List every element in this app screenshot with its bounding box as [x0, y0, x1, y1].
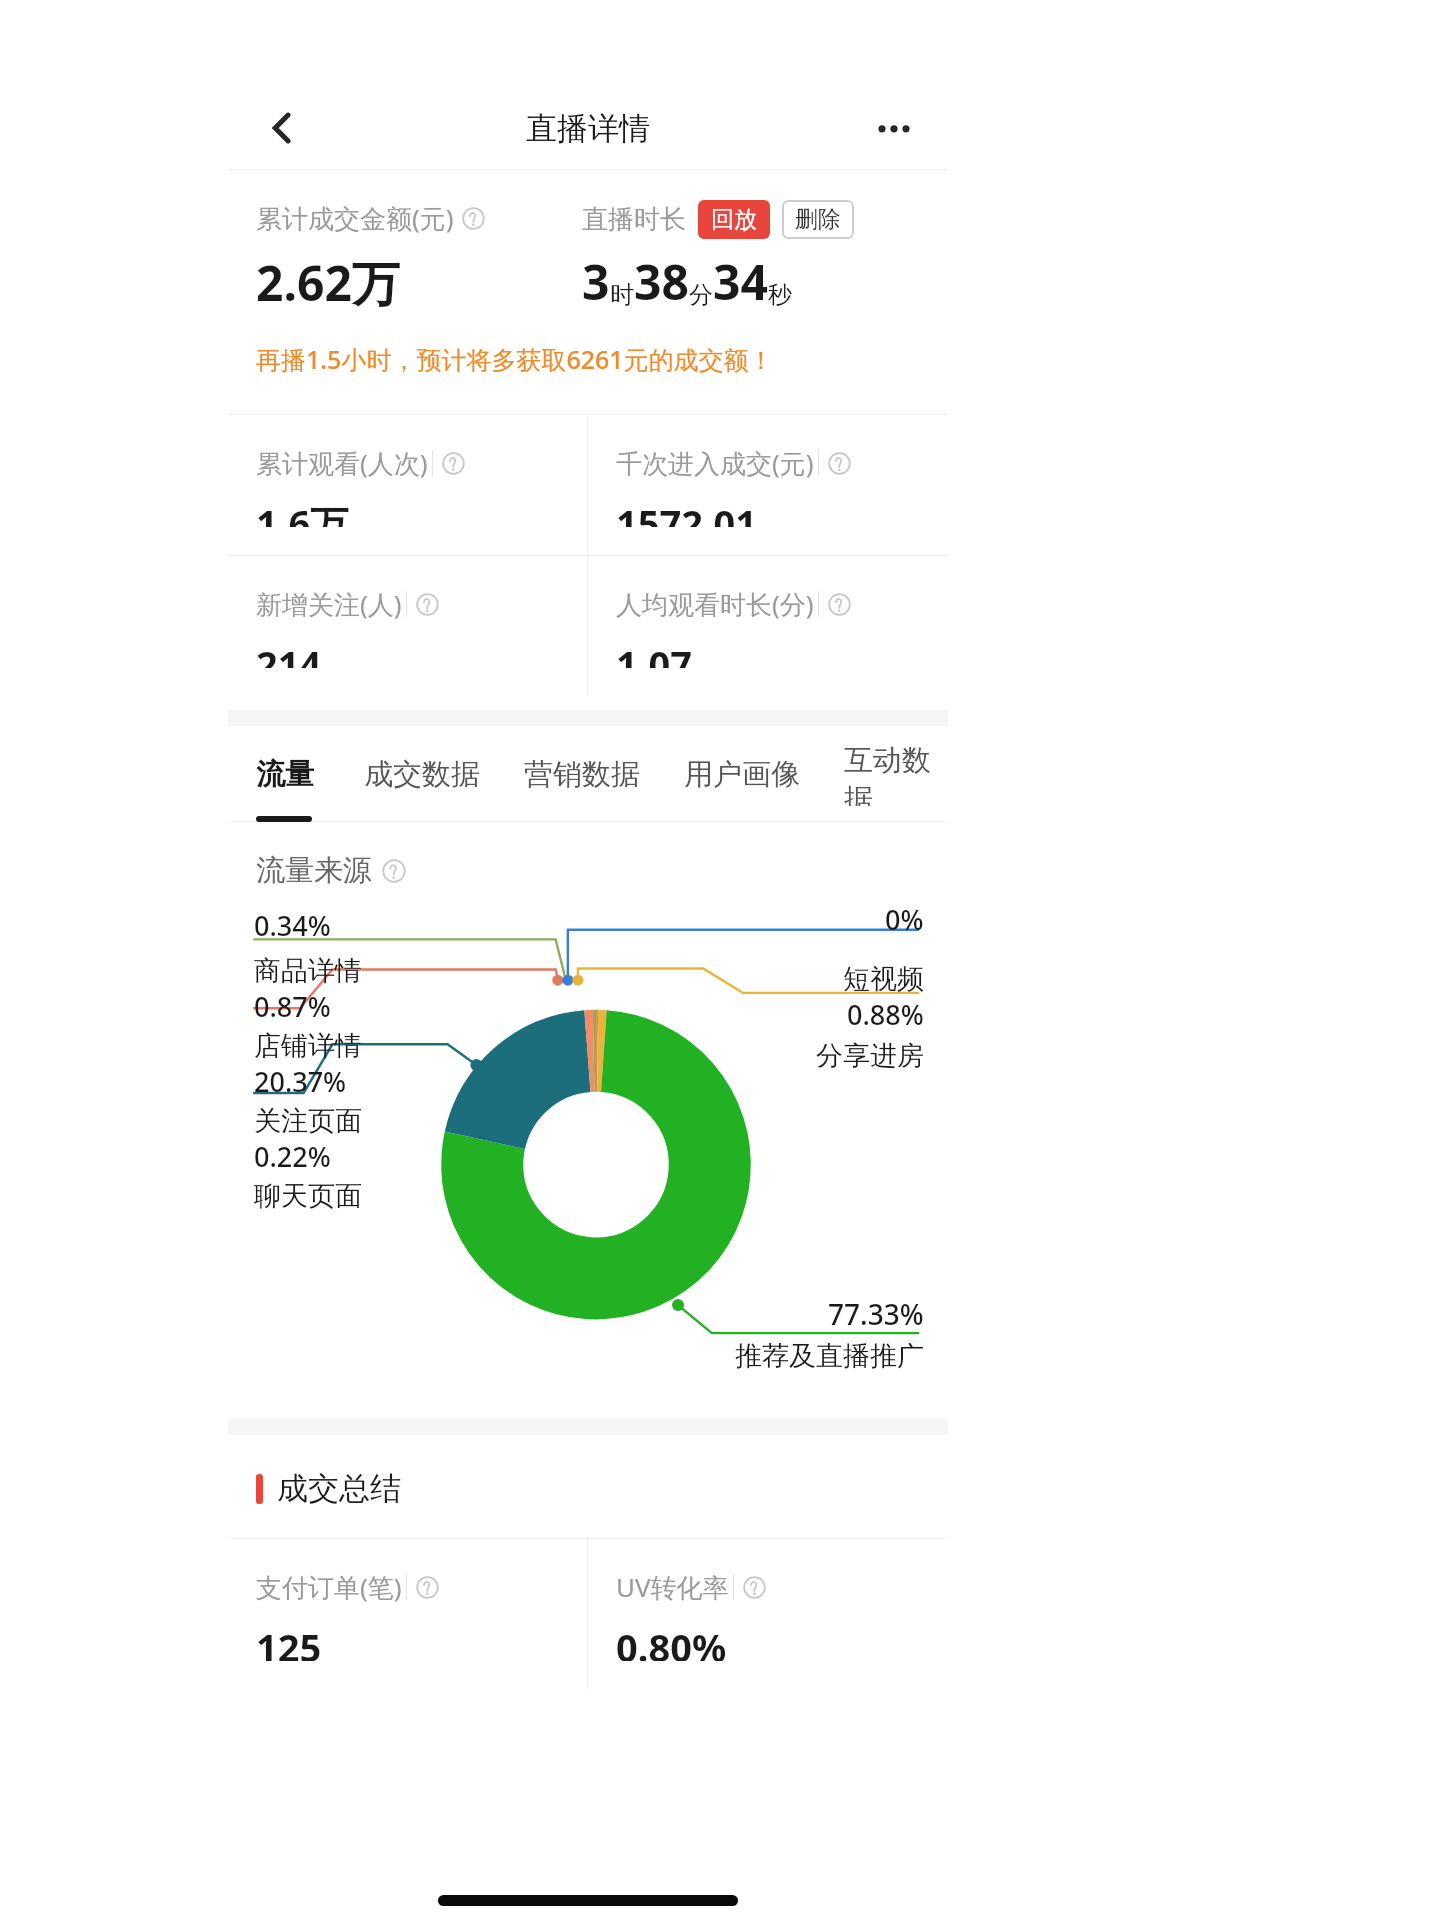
- staticText: 214: [256, 638, 322, 668]
- staticText: 0.80%: [616, 1621, 727, 1661]
- staticText: 短视频: [843, 962, 924, 996]
- staticText: 流量: [256, 756, 314, 793]
- button[interactable]: Back: [250, 96, 314, 160]
- staticText: 人均观看时长(分): [616, 586, 814, 622]
- button[interactable]: 回放: [698, 200, 770, 239]
- staticText: 125: [256, 1621, 322, 1661]
- button[interactable]: 互动数据: [844, 726, 948, 822]
- staticText: 聊天页面: [254, 1179, 362, 1213]
- staticText: 1.07: [616, 638, 692, 668]
- staticText: 成交总结: [277, 1469, 401, 1508]
- staticText: 0%: [885, 901, 924, 938]
- staticText: 0.22%: [254, 1138, 331, 1175]
- staticText: 成交数据: [364, 756, 480, 793]
- staticText: 千次进入成交(元): [616, 445, 814, 481]
- staticText: 77.33%: [828, 1295, 924, 1333]
- staticText: 回放: [711, 205, 757, 234]
- staticText: 用户画像: [684, 756, 800, 793]
- staticText: 0.87%: [254, 988, 331, 1025]
- staticText: 34: [713, 249, 768, 314]
- button[interactable]: 营销数据: [524, 740, 640, 809]
- staticText: 流量来源: [256, 852, 372, 889]
- staticText: 分: [689, 280, 713, 310]
- staticText: 店铺详情: [254, 1029, 362, 1063]
- staticText: 再播1.5小时，预计将多获取6261元的成交额！: [256, 342, 774, 376]
- staticText: 20.37%: [254, 1063, 347, 1100]
- staticText: 互动数据: [844, 742, 948, 806]
- staticText: 3: [582, 249, 610, 314]
- staticText: 累计成交金额(元): [256, 200, 454, 236]
- staticText: 营销数据: [524, 756, 640, 793]
- staticText: 累计观看(人次): [256, 445, 428, 481]
- staticText: UV转化率: [616, 1569, 729, 1605]
- staticText: 直播时长: [582, 203, 686, 236]
- staticText: 推荐及直播推广: [735, 1339, 924, 1373]
- button[interactable]: 流量: [256, 740, 314, 809]
- staticText: 0.34%: [254, 907, 331, 944]
- staticText: 1.6万: [256, 497, 349, 527]
- staticText: 38: [634, 249, 689, 314]
- staticText: 分享进房: [816, 1039, 924, 1073]
- staticText: 2.62万: [256, 250, 400, 316]
- staticText: 秒: [768, 280, 792, 310]
- button[interactable]: More options: [862, 96, 926, 160]
- button[interactable]: 用户画像: [684, 740, 800, 809]
- staticText: 新增关注(人): [256, 586, 402, 622]
- button[interactable]: 删除: [782, 200, 854, 239]
- staticText: 删除: [795, 205, 841, 234]
- staticText: 商品详情: [254, 954, 362, 988]
- staticText: 关注页面: [254, 1104, 362, 1138]
- staticText: 直播详情: [526, 109, 650, 148]
- button[interactable]: 成交数据: [364, 740, 480, 809]
- staticText: 时: [610, 280, 634, 310]
- staticText: 0.88%: [847, 996, 924, 1033]
- staticText: 1572.01: [616, 497, 758, 527]
- staticText: 支付订单(笔): [256, 1569, 402, 1605]
